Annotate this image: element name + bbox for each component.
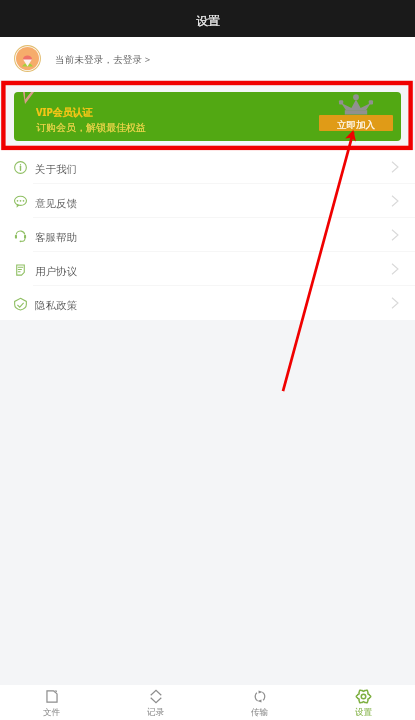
button[interactable]: 传输 — [207, 685, 311, 720]
staticText: 意见反馈 — [35, 197, 77, 210]
staticText: 记录 — [147, 707, 164, 718]
staticText: 设置 — [355, 707, 372, 718]
button[interactable]: 当前未登录，去登录 > — [0, 37, 415, 80]
button[interactable]: 设置 — [311, 685, 415, 720]
button[interactable]: 关于我们 — [0, 150, 415, 184]
button[interactable]: 立即加入 — [319, 115, 393, 131]
staticText: 文件 — [43, 707, 60, 718]
staticText: 订购会员，解锁最佳权益 — [36, 121, 146, 134]
button[interactable]: 客服帮助 — [0, 218, 415, 252]
button[interactable]: 用户协议 — [0, 252, 415, 286]
staticText: 当前未登录，去登录 > — [55, 53, 151, 66]
staticText: VIP会员认证 — [36, 105, 93, 119]
staticText: 隐私政策 — [35, 299, 77, 312]
button[interactable]: 隐私政策 — [0, 286, 415, 320]
staticText: 客服帮助 — [35, 231, 77, 244]
staticText: 关于我们 — [35, 163, 77, 176]
button[interactable]: 意见反馈 — [0, 184, 415, 218]
staticText: 传输 — [251, 707, 268, 718]
staticText: 立即加入 — [337, 119, 375, 131]
button[interactable]: 文件 — [0, 685, 103, 720]
staticText: 用户协议 — [35, 265, 77, 278]
button[interactable]: 记录 — [103, 685, 207, 720]
staticText: 设置 — [196, 13, 220, 28]
button[interactable]: VIP会员认证 — [14, 92, 401, 141]
